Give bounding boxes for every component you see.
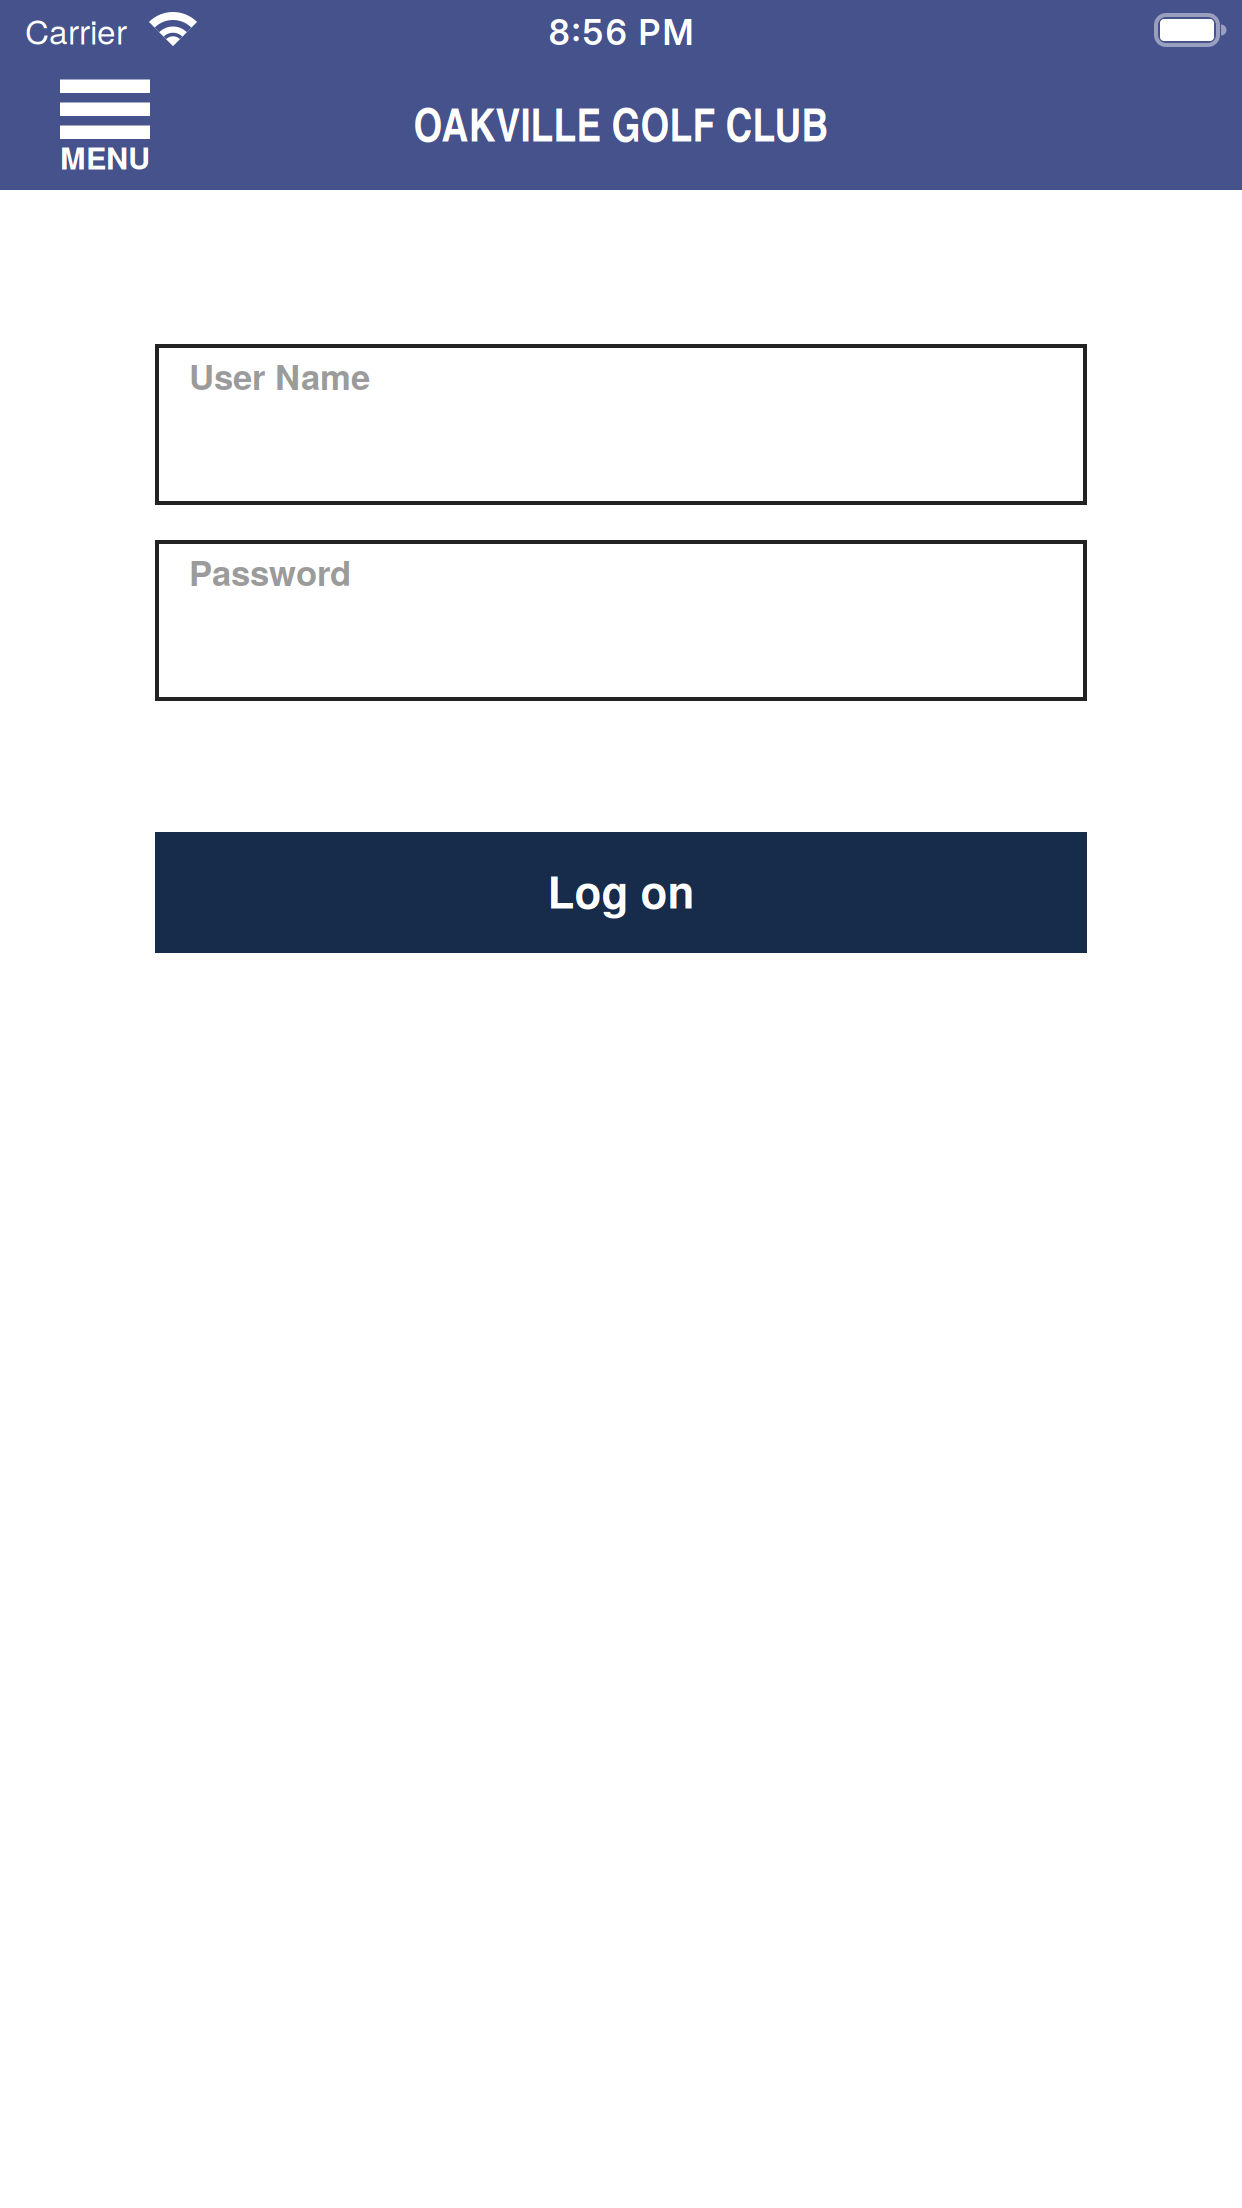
button[interactable]: Log on xyxy=(155,832,1087,953)
button[interactable]: Password xyxy=(155,540,1087,701)
button[interactable]: User Name xyxy=(155,344,1087,505)
staticText: User Name xyxy=(189,351,370,401)
staticText: MENU xyxy=(60,135,150,179)
staticText: 8:56 PM xyxy=(548,11,693,53)
staticText: Log on xyxy=(547,859,694,922)
staticText: Password xyxy=(189,547,351,597)
button[interactable]: Menu xyxy=(60,79,150,191)
staticText: Carrier xyxy=(25,6,127,54)
staticText: OAKVILLE GOLF CLUB xyxy=(413,91,828,155)
